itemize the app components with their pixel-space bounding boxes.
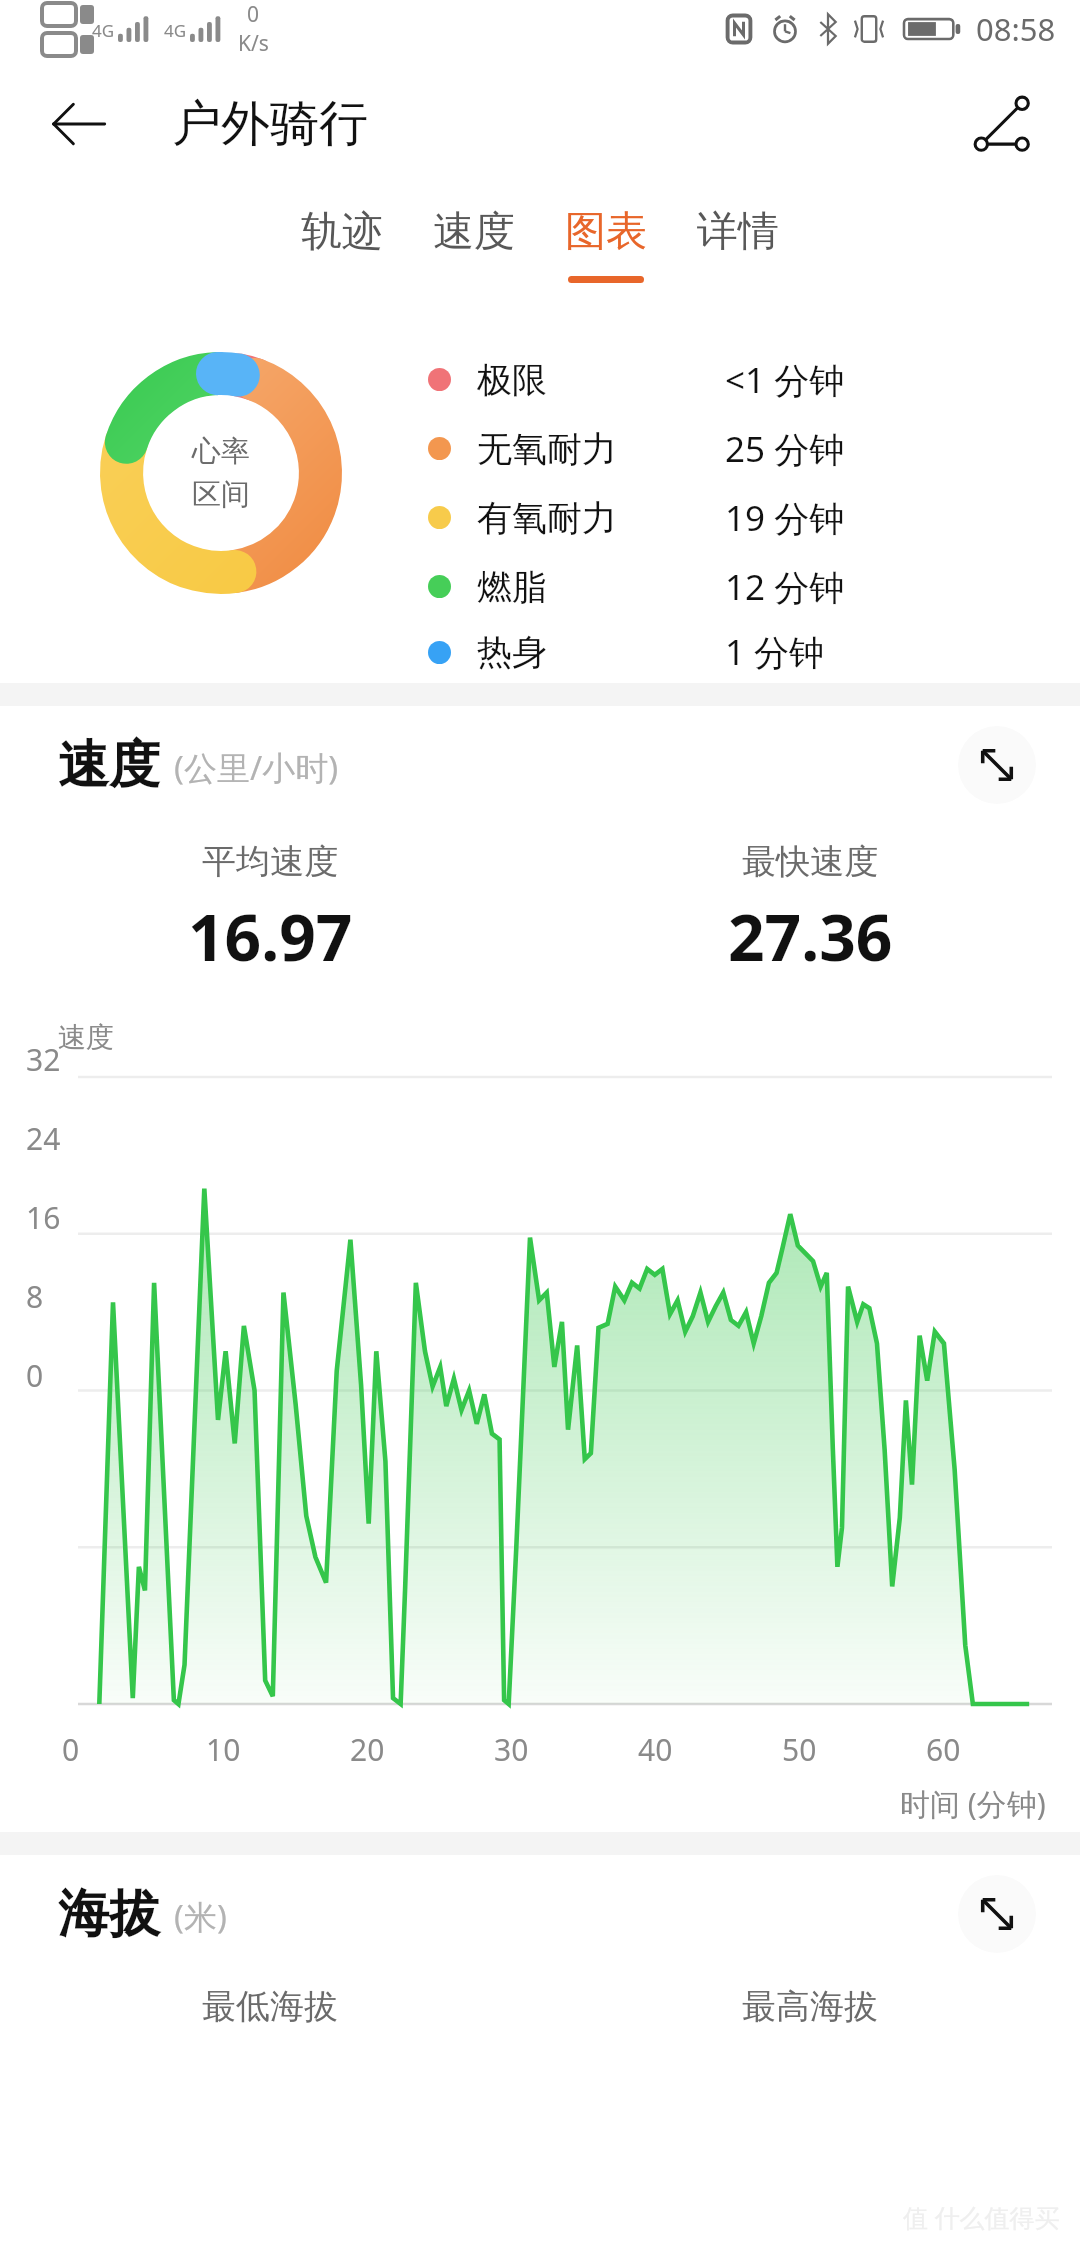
staticText: 8 <box>26 1276 44 1317</box>
staticText: 最高海拔 <box>742 1985 878 2028</box>
button[interactable]: Share <box>960 82 1044 166</box>
button[interactable]: Expand chart <box>958 726 1036 804</box>
button[interactable]: 图表 <box>565 190 647 283</box>
staticText: 区间 <box>192 476 250 513</box>
staticText: 60 <box>926 1729 961 1770</box>
button[interactable]: 有氧耐力 <box>428 483 988 552</box>
staticText: 27.36 <box>728 893 893 980</box>
staticText: 有氧耐力 <box>477 496 725 540</box>
staticText: 平均速度 <box>202 840 338 883</box>
staticText: 4G <box>92 19 115 42</box>
staticText: 无氧耐力 <box>477 427 725 471</box>
staticText: 燃脂 <box>477 565 725 609</box>
staticText: 速度 <box>58 1020 114 1055</box>
staticText: 速度 <box>58 733 160 797</box>
staticText: (米) <box>174 1894 227 1939</box>
staticText: 轨迹 <box>301 206 383 258</box>
staticText: 值 什么值得买 <box>903 2200 1060 2234</box>
staticText: 0 <box>247 0 260 29</box>
staticText: 19 分钟 <box>725 494 845 542</box>
staticText: 热身 <box>477 630 725 674</box>
staticText: 0 <box>26 1355 44 1396</box>
staticText: 40 <box>638 1729 673 1770</box>
staticText: 户外骑行 <box>172 93 368 155</box>
staticText: 极限 <box>477 358 725 402</box>
staticText: 50 <box>782 1729 817 1770</box>
staticText: 心率 <box>192 433 250 470</box>
button[interactable]: 极限 <box>428 345 988 414</box>
button[interactable]: 详情 <box>697 190 779 283</box>
button[interactable]: 无氧耐力 <box>428 414 988 483</box>
staticText: K/s <box>238 29 269 58</box>
staticText: 4G <box>164 19 187 42</box>
staticText: 图表 <box>565 206 647 258</box>
staticText: 速度 <box>433 206 515 258</box>
button[interactable]: Expand chart <box>958 1875 1036 1953</box>
staticText: 最低海拔 <box>202 1985 338 2028</box>
button[interactable]: 轨迹 <box>301 190 383 283</box>
button[interactable]: 热身 <box>428 621 988 683</box>
staticText: 32 <box>26 1039 61 1080</box>
staticText: 详情 <box>697 206 779 258</box>
staticText: 30 <box>494 1729 529 1770</box>
staticText: 10 <box>206 1729 241 1770</box>
staticText: 0 <box>62 1729 80 1770</box>
staticText: 1 分钟 <box>725 628 825 676</box>
staticText: 24 <box>26 1118 61 1159</box>
staticText: 25 分钟 <box>725 425 845 473</box>
staticText: (公里/小时) <box>174 745 339 790</box>
button[interactable]: 燃脂 <box>428 552 988 621</box>
staticText: 最快速度 <box>742 840 878 883</box>
button[interactable]: Back <box>40 86 116 162</box>
staticText: 16 <box>26 1197 61 1238</box>
staticText: 时间 (分钟) <box>900 1783 1046 1824</box>
staticText: 16.97 <box>188 893 353 980</box>
staticText: 20 <box>350 1729 385 1770</box>
staticText: 12 分钟 <box>725 563 845 611</box>
staticText: 海拔 <box>58 1882 160 1946</box>
button[interactable]: 速度 <box>433 190 515 283</box>
staticText: 08:58 <box>976 8 1056 50</box>
staticText: <1 分钟 <box>725 356 845 404</box>
